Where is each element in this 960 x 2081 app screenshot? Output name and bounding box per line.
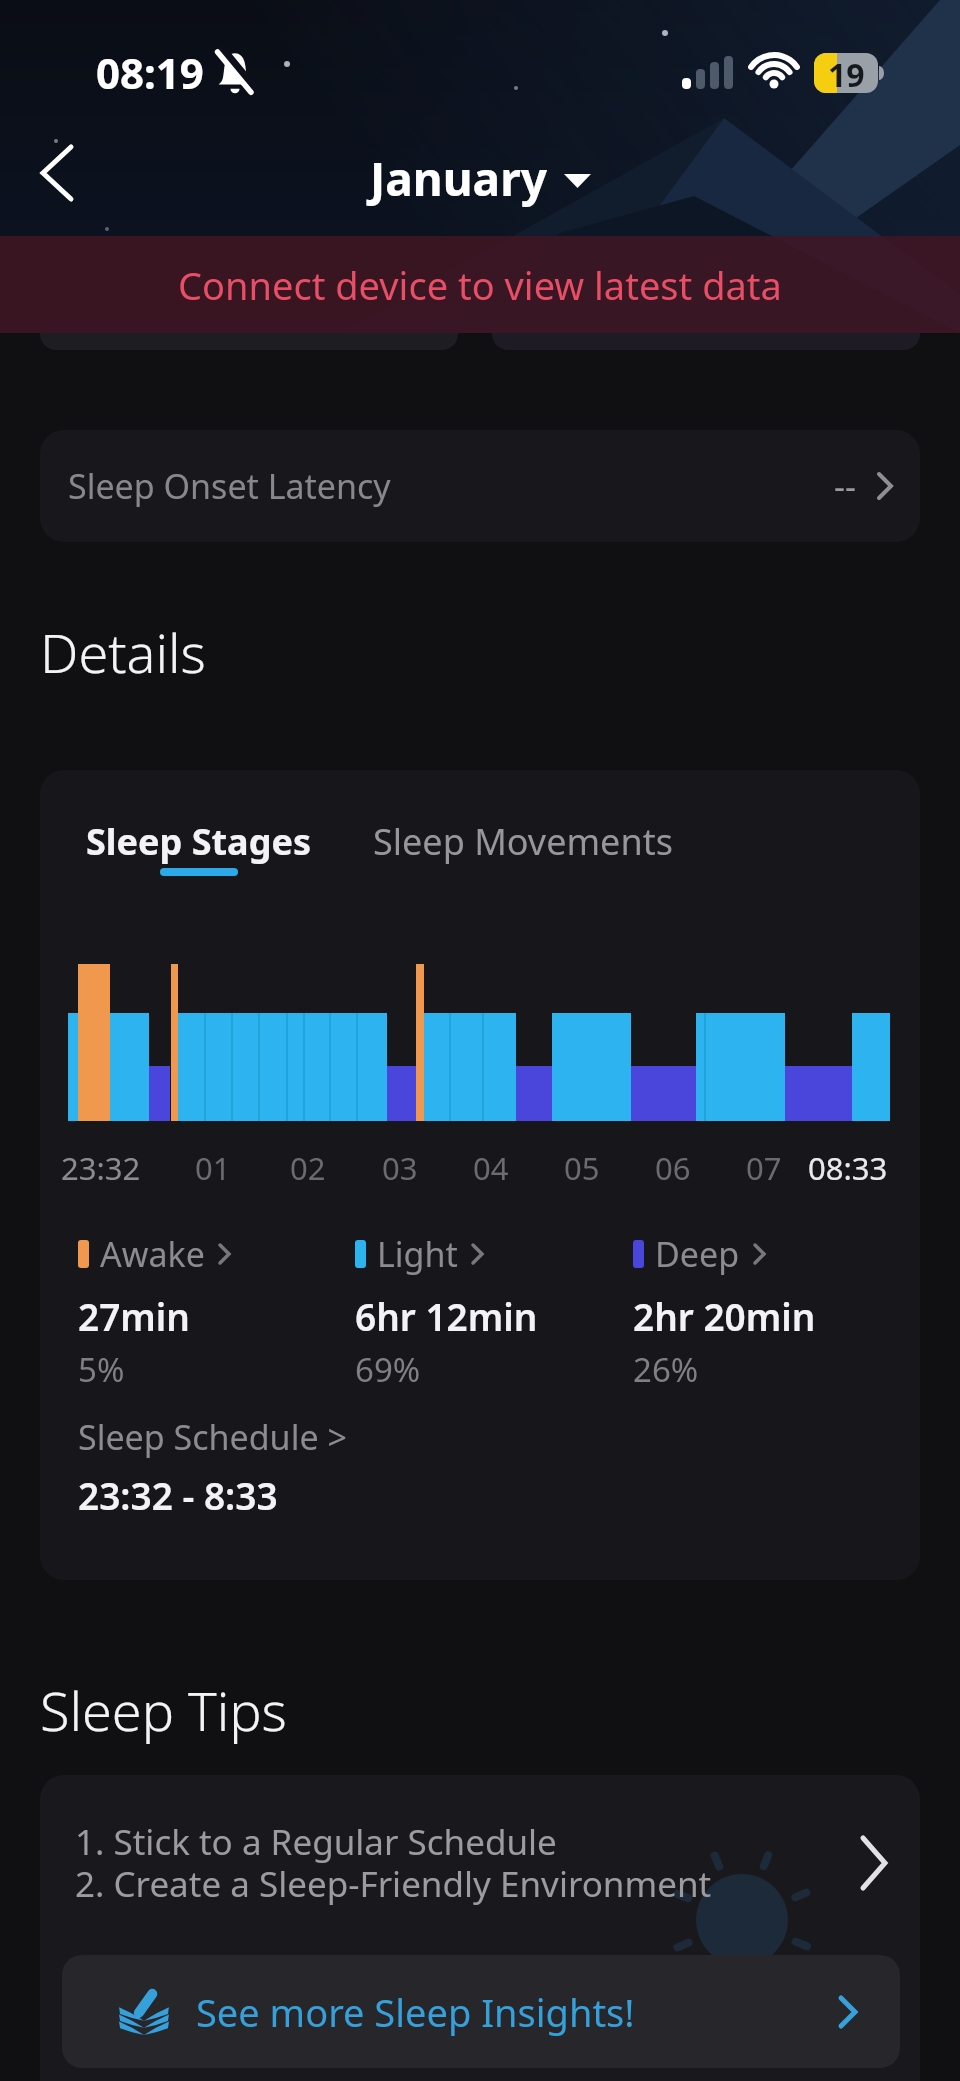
staticText: Sleep Schedule > bbox=[78, 1414, 347, 1460]
staticText: 23:32 bbox=[61, 1147, 141, 1189]
staticText: 08:33 bbox=[808, 1147, 888, 1189]
staticText: Sleep Tips bbox=[40, 1673, 287, 1747]
staticText: See more Sleep Insights! bbox=[196, 1986, 635, 2038]
staticText: Connect device to view latest data bbox=[178, 259, 782, 311]
button[interactable] bbox=[28, 145, 84, 201]
staticText: 05 bbox=[564, 1147, 600, 1189]
staticText: 1. Stick to a Regular Schedule 2. Create… bbox=[75, 1818, 712, 1907]
staticText: 06 bbox=[655, 1147, 691, 1189]
staticText: 6hr 12min bbox=[355, 1291, 538, 1341]
button[interactable]: Sleep Onset Latency bbox=[40, 430, 920, 542]
button[interactable]: Awake bbox=[78, 1231, 230, 1392]
staticText: Deep bbox=[655, 1231, 740, 1277]
staticText: Details bbox=[40, 615, 206, 689]
staticText: 2hr 20min bbox=[633, 1291, 816, 1341]
button[interactable]: Sleep Schedule > bbox=[78, 1414, 347, 1520]
staticText: 08:19 bbox=[96, 44, 204, 101]
staticText: 23:32 - 8:33 bbox=[78, 1470, 278, 1520]
staticText: 26% bbox=[633, 1347, 699, 1392]
button[interactable]: Sleep Stages bbox=[86, 817, 312, 876]
staticText: 04 bbox=[473, 1147, 509, 1189]
staticText: 07 bbox=[746, 1147, 782, 1189]
staticText: Light bbox=[377, 1231, 458, 1277]
button[interactable]: Light bbox=[355, 1231, 538, 1392]
staticText: 03 bbox=[382, 1147, 418, 1189]
staticText: 19 bbox=[828, 53, 865, 93]
button[interactable]: See more Sleep Insights! bbox=[62, 1955, 900, 2068]
staticText: 5% bbox=[78, 1347, 125, 1392]
staticText: 69% bbox=[355, 1347, 421, 1392]
staticText: January bbox=[370, 147, 547, 210]
staticText: 01 bbox=[195, 1147, 231, 1189]
staticText: 27min bbox=[78, 1291, 190, 1341]
button[interactable]: January bbox=[370, 147, 591, 210]
button[interactable]: Deep bbox=[633, 1231, 816, 1392]
button[interactable]: 1. Stick to a Regular Schedule 2. Create… bbox=[40, 1775, 920, 2081]
staticText: Sleep Stages bbox=[86, 817, 312, 866]
button[interactable]: Sleep Movements bbox=[373, 817, 673, 866]
staticText: 02 bbox=[290, 1147, 326, 1189]
staticText: Awake bbox=[100, 1231, 205, 1277]
staticText: -- bbox=[834, 463, 856, 509]
staticText: Sleep Onset Latency bbox=[68, 463, 391, 509]
